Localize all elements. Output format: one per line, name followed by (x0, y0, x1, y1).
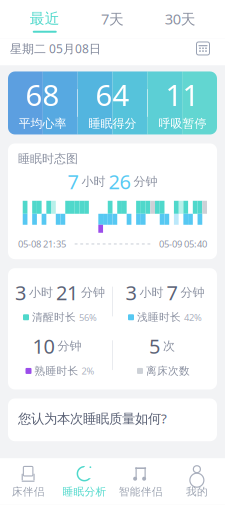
staticText: 21 (56, 279, 78, 306)
staticText: 5 (149, 333, 160, 359)
button[interactable]: 最近 (22, 8, 68, 35)
staticText: 睡眠分析 (62, 485, 106, 498)
staticText: 睡眠得分 (88, 116, 136, 131)
staticText: 64 (95, 75, 129, 114)
staticText: 您认为本次睡眠质量如何? (18, 409, 167, 427)
staticText: 分钟 (180, 285, 204, 300)
staticText: 7天 (101, 9, 124, 28)
staticText: 3 (125, 279, 136, 306)
staticText: 星期二 05月08日 (10, 40, 101, 56)
staticText: 最近 (30, 10, 60, 28)
staticText: 26 (108, 168, 130, 195)
staticText: 睡眠时态图 (18, 151, 78, 166)
staticText: 我的 (186, 485, 208, 498)
staticText: 分钟 (133, 174, 157, 189)
staticText: 7 (67, 168, 78, 195)
button[interactable]: 选择日期 (191, 38, 215, 58)
staticText: 分钟 (81, 285, 105, 300)
staticText: 68 (25, 75, 59, 114)
staticText: 离床次数 (146, 364, 190, 377)
staticText: 次 (163, 339, 175, 353)
staticText: 平均心率 (18, 116, 66, 131)
staticText: 呼吸暂停 (158, 116, 206, 131)
button[interactable]: 我的 (169, 463, 225, 500)
staticText: 床伴侣 (12, 485, 45, 498)
staticText: 分钟 (57, 339, 81, 353)
staticText: 56% (79, 311, 97, 323)
staticText: 浅睡时长 (137, 311, 181, 324)
staticText: 42% (184, 311, 202, 323)
staticText: 智能伴侣 (119, 485, 163, 498)
staticText: 2% (81, 365, 94, 377)
button[interactable]: 30天 (157, 7, 203, 35)
staticText: 30天 (165, 9, 196, 28)
staticText: 10 (32, 333, 54, 359)
button[interactable]: 床伴侣 (0, 463, 56, 500)
staticText: 05-08 21:35 (18, 238, 66, 250)
staticText: 7 (166, 279, 177, 306)
staticText: 熟睡时长 (34, 364, 78, 377)
staticText: 3 (15, 279, 26, 306)
button[interactable]: 7天 (89, 7, 135, 35)
button[interactable]: 睡眠分析 (56, 463, 112, 500)
staticText: 小时 (139, 285, 163, 300)
button[interactable]: 您认为本次睡眠质量如何? (8, 398, 217, 441)
staticText: 清醒时长 (32, 311, 76, 324)
staticText: 小时 (29, 285, 53, 300)
staticText: 05-09 05:40 (159, 238, 207, 250)
staticText: 11 (165, 75, 199, 114)
button[interactable]: 智能伴侣 (112, 463, 169, 500)
staticText: 小时 (81, 174, 105, 189)
